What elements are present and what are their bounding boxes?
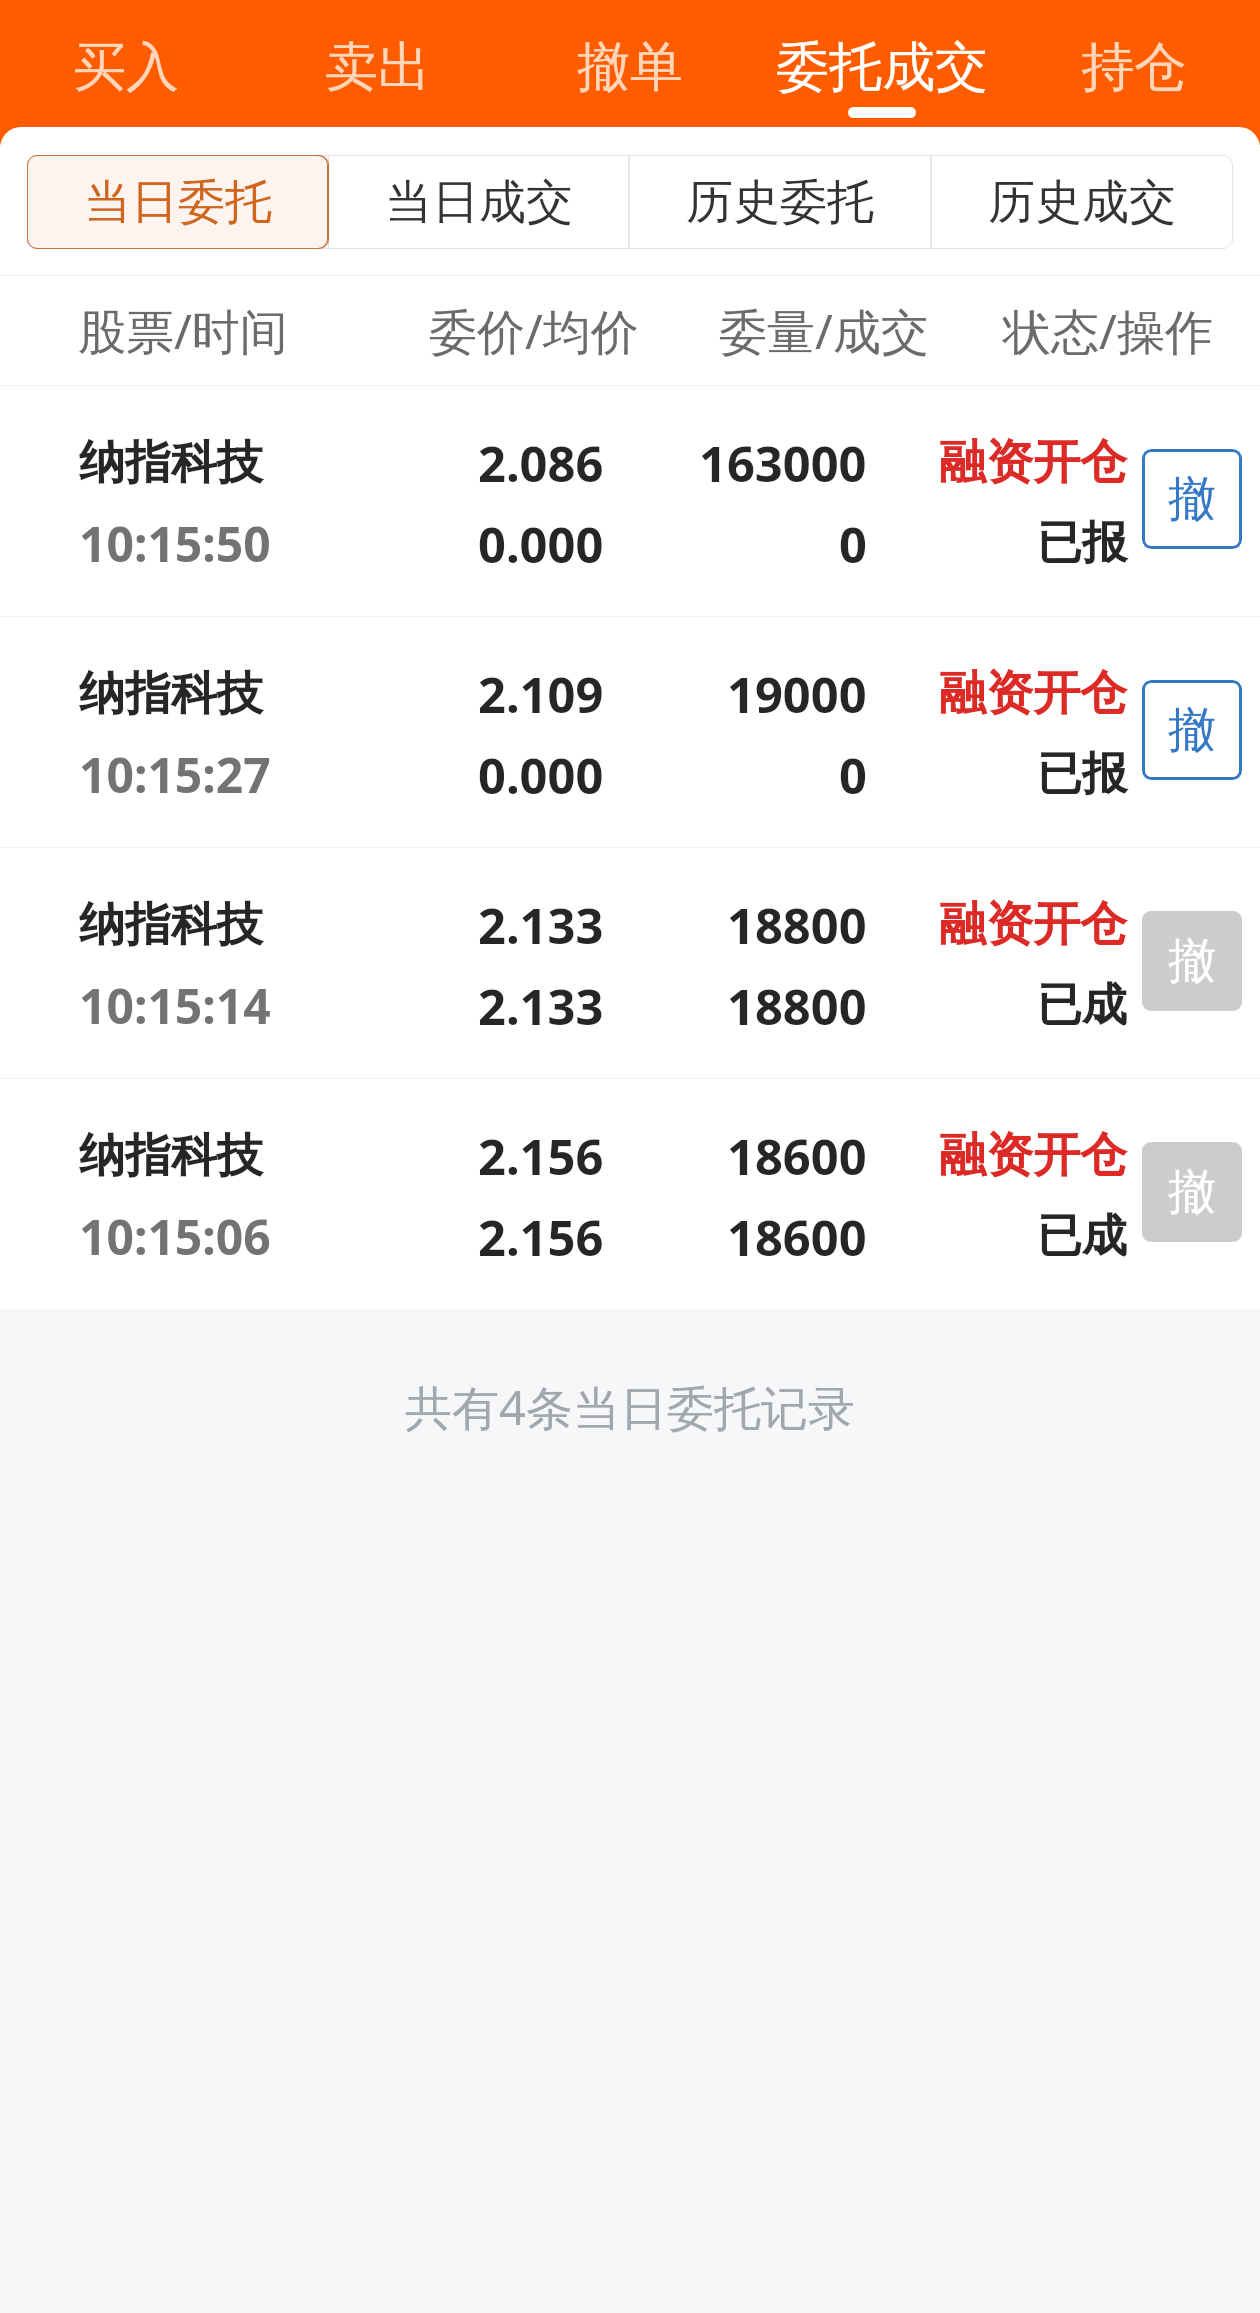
button[interactable]: 历史委托 bbox=[629, 155, 931, 249]
staticText: 撤 bbox=[1168, 700, 1216, 760]
staticText: 融资开仓 bbox=[939, 664, 1127, 723]
staticText: 2.156 bbox=[478, 1204, 604, 1270]
staticText: 撤 bbox=[1168, 469, 1216, 529]
button[interactable]: 撤单 bbox=[1142, 449, 1242, 549]
button[interactable]: 纳指科技 bbox=[0, 848, 1260, 1078]
staticText: 18800 bbox=[727, 973, 867, 1039]
staticText: 纳指科技 bbox=[79, 434, 263, 492]
staticText: 已成 bbox=[1037, 1208, 1127, 1265]
button[interactable]: 当日委托 bbox=[27, 155, 328, 249]
staticText: 10:15:27 bbox=[79, 742, 271, 807]
staticText: 10:15:14 bbox=[79, 973, 271, 1038]
button[interactable]: 持仓 bbox=[1008, 0, 1260, 127]
button[interactable]: 卖出 bbox=[252, 0, 504, 127]
button[interactable]: 纳指科技 bbox=[0, 1079, 1260, 1309]
button[interactable]: 撤单（已成交，不可撤） bbox=[1142, 1142, 1242, 1242]
staticText: 融资开仓 bbox=[939, 895, 1127, 954]
staticText: 委价/均价 bbox=[429, 298, 639, 364]
staticText: 0.000 bbox=[478, 511, 604, 577]
staticText: 纳指科技 bbox=[79, 1127, 263, 1185]
staticText: 共有4条当日委托记录 bbox=[0, 1375, 1260, 1439]
staticText: 状态/操作 bbox=[1003, 298, 1213, 364]
staticText: 已报 bbox=[1037, 515, 1127, 572]
staticText: 买入 bbox=[73, 34, 179, 101]
button[interactable]: 撤单 bbox=[504, 0, 756, 127]
staticText: 融资开仓 bbox=[939, 433, 1127, 492]
staticText: 撤 bbox=[1168, 931, 1216, 991]
button[interactable]: 撤单（已成交，不可撤） bbox=[1142, 911, 1242, 1011]
button[interactable]: 纳指科技 bbox=[0, 617, 1260, 847]
staticText: 已成 bbox=[1037, 977, 1127, 1034]
staticText: 当日成交 bbox=[385, 173, 573, 232]
staticText: 历史成交 bbox=[988, 173, 1176, 232]
staticText: 2.109 bbox=[478, 661, 604, 727]
button[interactable]: 委托成交 bbox=[756, 0, 1008, 127]
staticText: 0 bbox=[839, 511, 867, 577]
button[interactable]: 历史成交 bbox=[931, 155, 1233, 249]
staticText: 历史委托 bbox=[686, 173, 874, 232]
staticText: 股票/时间 bbox=[78, 298, 288, 364]
staticText: 10:15:50 bbox=[79, 511, 271, 576]
staticText: 委托成交 bbox=[776, 34, 988, 101]
button[interactable]: 纳指科技 bbox=[0, 386, 1260, 616]
staticText: 18600 bbox=[727, 1204, 867, 1270]
staticText: 2.133 bbox=[478, 892, 604, 958]
staticText: 委量/成交 bbox=[719, 298, 929, 364]
staticText: 163000 bbox=[699, 430, 867, 496]
button[interactable]: 撤单 bbox=[1142, 680, 1242, 780]
staticText: 0.000 bbox=[478, 742, 604, 808]
staticText: 19000 bbox=[727, 661, 867, 727]
staticText: 18600 bbox=[727, 1123, 867, 1189]
staticText: 融资开仓 bbox=[939, 1126, 1127, 1185]
staticText: 持仓 bbox=[1081, 34, 1187, 101]
staticText: 卖出 bbox=[325, 34, 431, 101]
button[interactable]: 买入 bbox=[0, 0, 252, 127]
staticText: 当日委托 bbox=[84, 173, 272, 232]
staticText: 撤单 bbox=[577, 34, 683, 101]
staticText: 0 bbox=[839, 742, 867, 808]
staticText: 纳指科技 bbox=[79, 665, 263, 723]
staticText: 已报 bbox=[1037, 746, 1127, 803]
staticText: 2.156 bbox=[478, 1123, 604, 1189]
button[interactable]: 当日成交 bbox=[328, 155, 629, 249]
staticText: 2.133 bbox=[478, 973, 604, 1039]
staticText: 撤 bbox=[1168, 1162, 1216, 1222]
staticText: 18800 bbox=[727, 892, 867, 958]
staticText: 10:15:06 bbox=[79, 1204, 271, 1269]
staticText: 纳指科技 bbox=[79, 896, 263, 954]
staticText: 2.086 bbox=[478, 430, 604, 496]
